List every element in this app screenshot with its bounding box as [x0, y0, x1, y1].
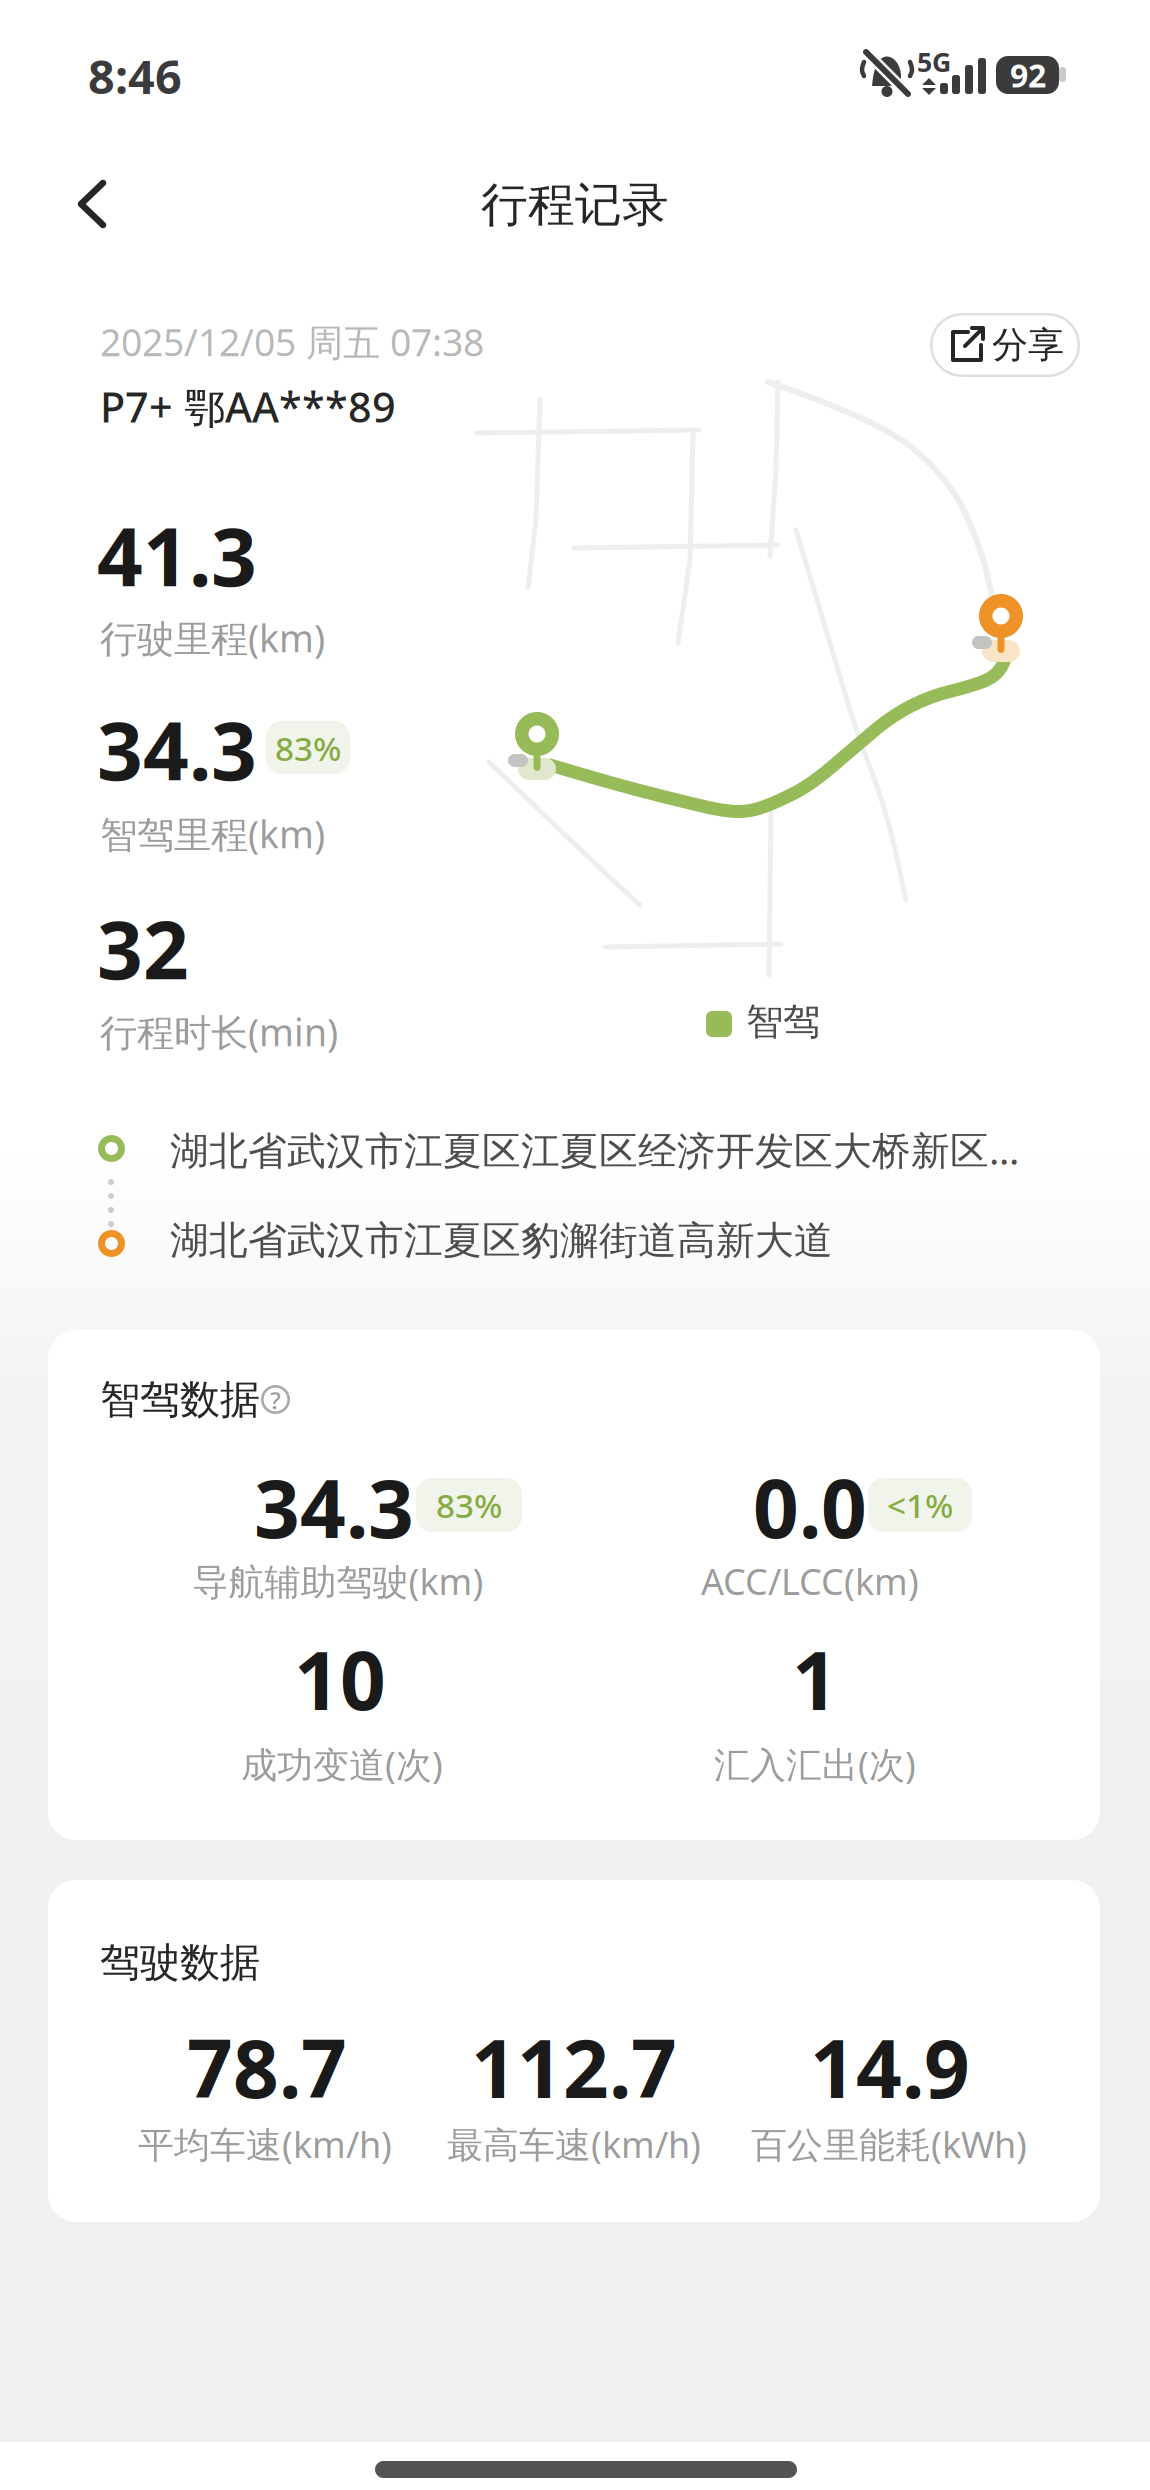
staticText: 1	[792, 1626, 838, 1732]
staticText: 14.9	[810, 2014, 970, 2120]
staticText: 百公里能耗(kWh)	[751, 2120, 1027, 2168]
staticText: ACC/LCC(km)	[701, 1557, 919, 1605]
staticText: 智驾数据	[100, 1375, 260, 1424]
staticText: 平均车速(km/h)	[138, 2120, 392, 2168]
staticText: 驾驶数据	[100, 1938, 260, 1987]
staticText: 0.0	[753, 1454, 867, 1560]
button[interactable]: 智驾数据说明	[261, 1385, 290, 1414]
staticText: 最高车速(km/h)	[447, 2120, 701, 2168]
staticText: 导航辅助驾驶(km)	[192, 1557, 483, 1605]
staticText: 2025/12/05 周五 07:38	[100, 317, 484, 367]
staticText: 5G	[917, 44, 951, 79]
staticText: 10	[294, 1626, 386, 1732]
staticText: 智驾	[746, 999, 820, 1045]
staticText: 34.3	[254, 1454, 414, 1560]
staticText: 汇入汇出(次)	[714, 1740, 916, 1788]
staticText: <1%	[887, 1483, 953, 1527]
staticText: 32	[97, 895, 189, 1001]
button[interactable]: 返回	[77, 180, 109, 228]
staticText: 78.7	[187, 2014, 347, 2120]
staticText: P7+ 鄂AA***89	[100, 379, 396, 434]
staticText: 8:46	[88, 45, 182, 107]
staticText: 34.3	[97, 696, 257, 802]
staticText: 行驶里程(km)	[100, 613, 325, 663]
staticText: 83%	[275, 726, 341, 770]
staticText: ?	[270, 1384, 281, 1416]
button[interactable]: 分享	[930, 313, 1080, 377]
staticText: 智驾里程(km)	[100, 809, 325, 859]
staticText: 41.3	[97, 502, 257, 608]
staticText: 成功变道(次)	[241, 1740, 443, 1788]
staticText: 湖北省武汉市江夏区豹澥街道高新大道	[170, 1217, 833, 1264]
staticText: 83%	[436, 1483, 502, 1527]
staticText: 92	[1010, 54, 1046, 96]
staticText: 湖北省武汉市江夏区江夏区经济开发区大桥新区...	[170, 1124, 1019, 1175]
staticText: 行程时长(min)	[100, 1007, 338, 1057]
staticText: 分享	[992, 323, 1064, 367]
staticText: 行程记录	[481, 176, 669, 234]
staticText: 112.7	[471, 2014, 677, 2120]
